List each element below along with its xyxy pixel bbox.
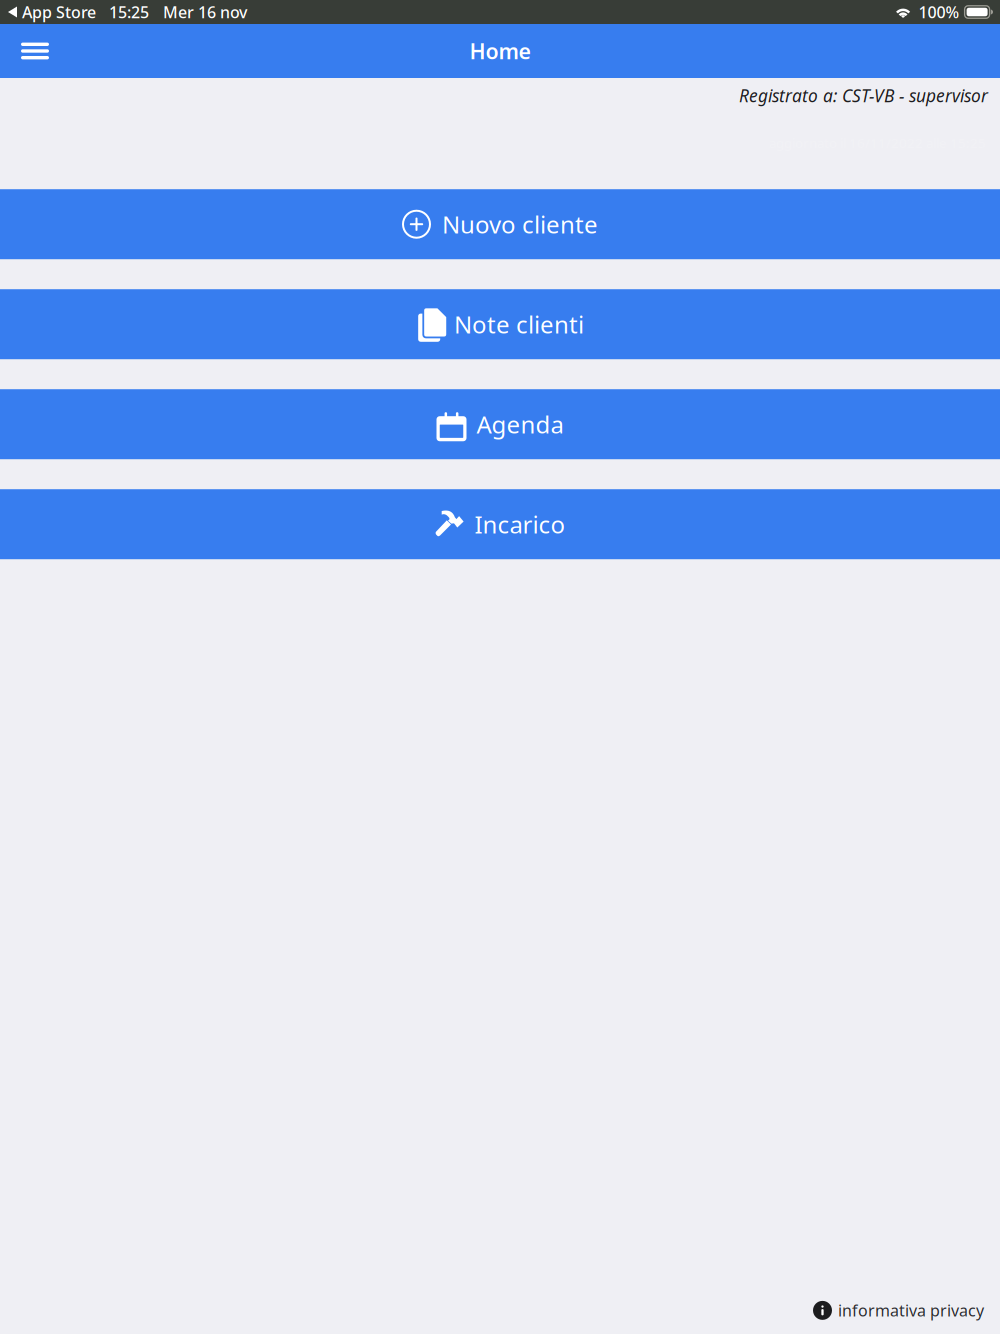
button[interactable]: informativa privacy (813, 1300, 984, 1321)
staticText: App Store (22, 1, 96, 23)
staticText: 15:25 (109, 1, 149, 23)
staticText: informativa privacy (838, 1300, 984, 1321)
button[interactable]: Nuovo cliente (0, 189, 1000, 259)
staticText: Note clienti (454, 308, 584, 340)
button[interactable]: Note clienti (0, 289, 1000, 359)
button[interactable]: Incarico (0, 489, 1000, 559)
button[interactable]: Menu (0, 24, 70, 78)
staticText: Agenda (476, 408, 563, 440)
staticText: Home (469, 37, 530, 65)
staticText: Nuovo cliente (442, 208, 598, 240)
staticText: 100% (919, 1, 960, 23)
staticText: Registrato a: CST-VB - supervisor (739, 84, 988, 107)
button[interactable]: Agenda (0, 389, 1000, 459)
staticText: Mer 16 nov (163, 1, 247, 23)
staticText: Incarico (474, 508, 565, 540)
